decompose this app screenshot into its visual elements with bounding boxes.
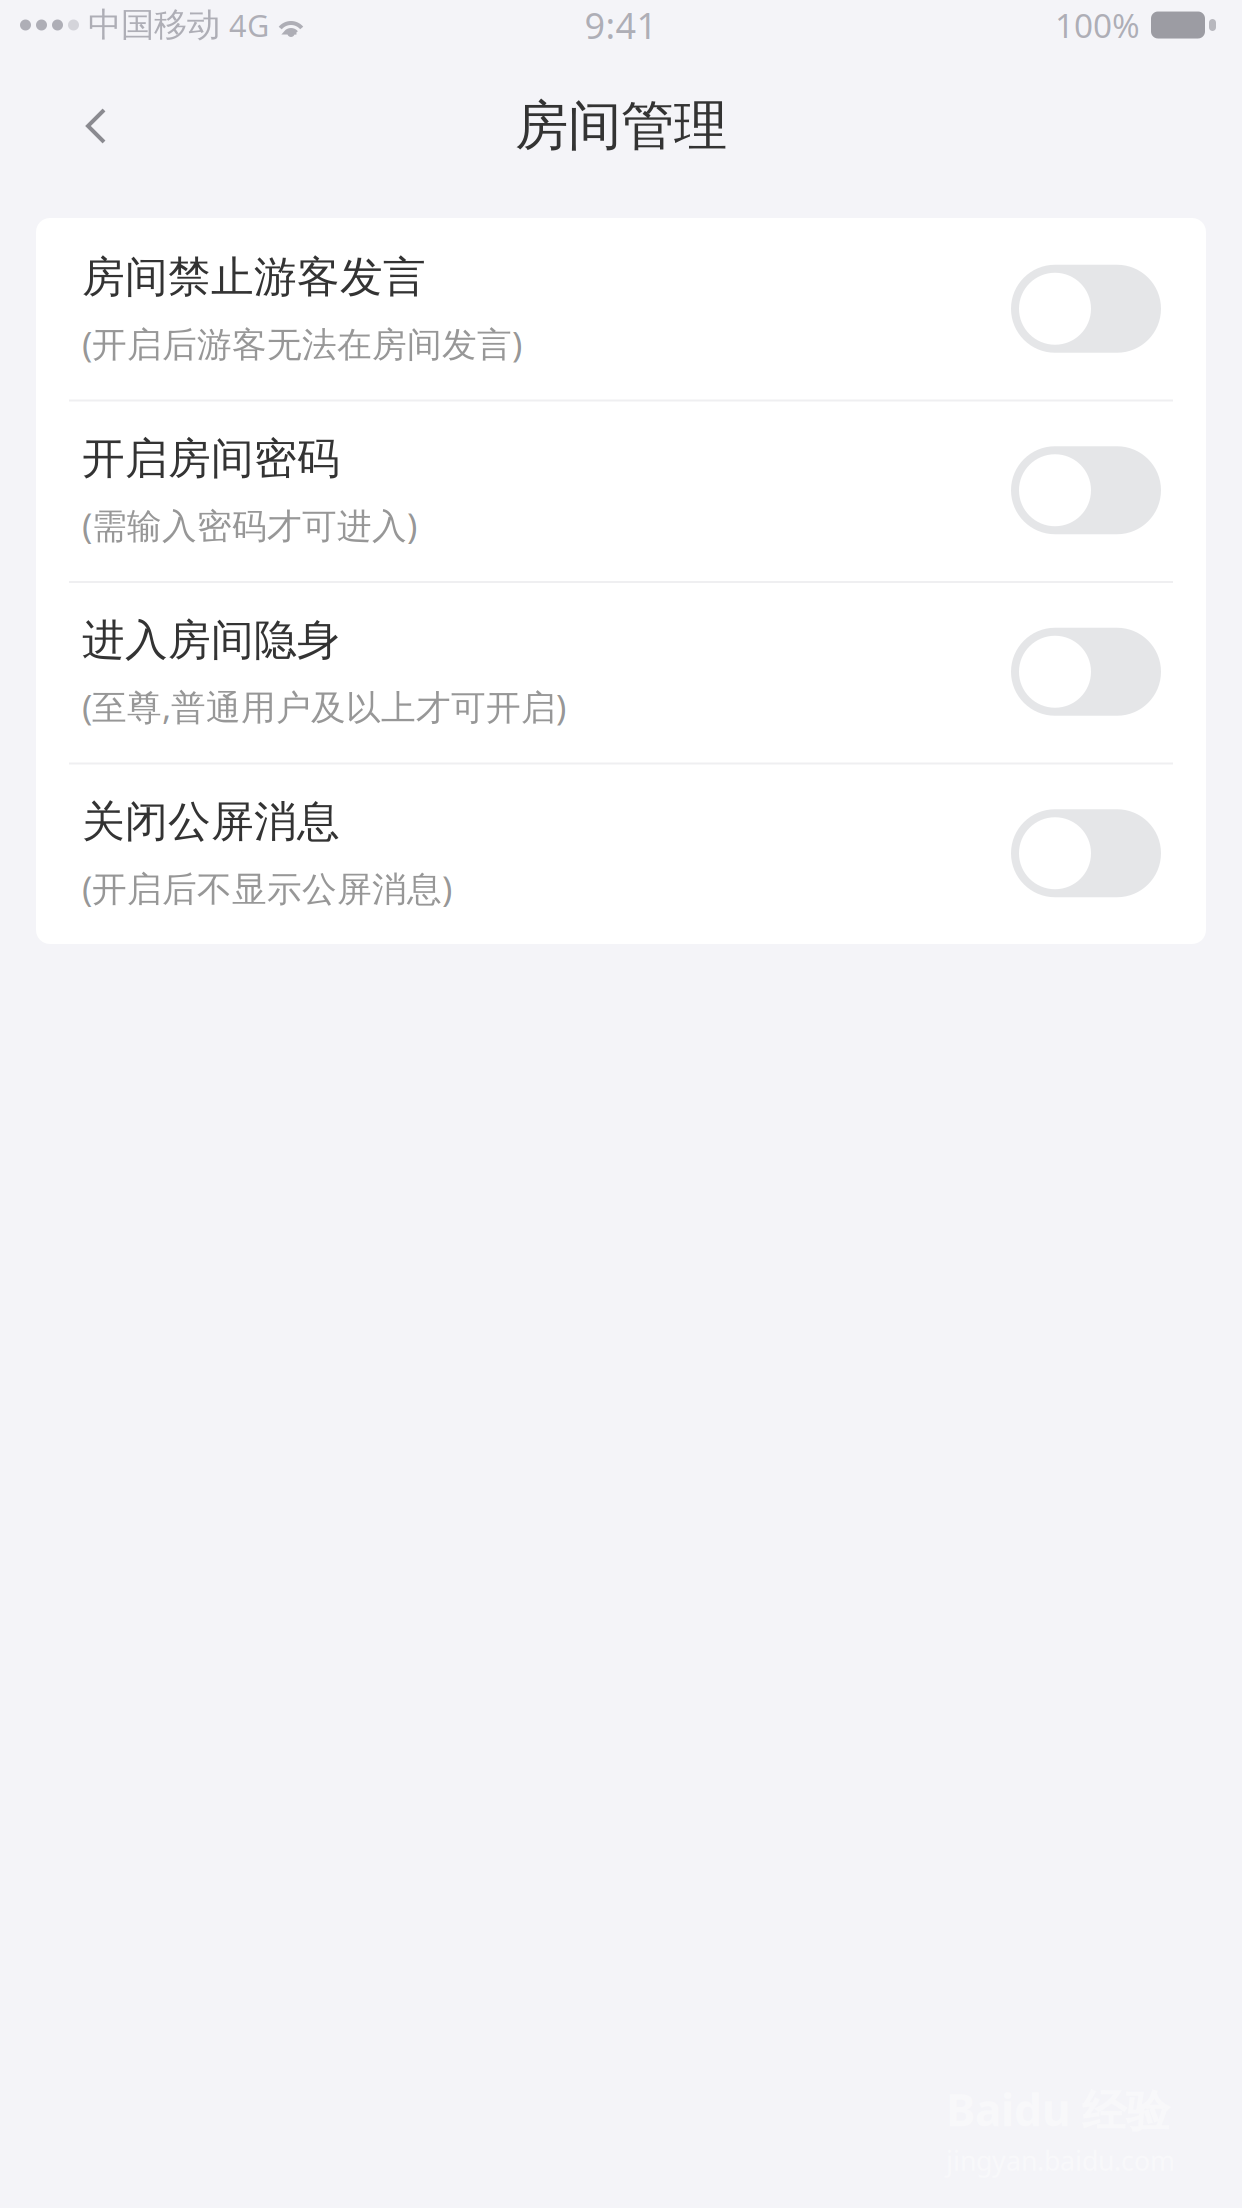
staticText: 开启房间密码 (82, 432, 340, 485)
button[interactable]: 关闭公屏消息 (36, 762, 1206, 944)
button[interactable]: Back (0, 53, 149, 199)
staticText: (至尊,普通用户及以上才可开启) (82, 683, 566, 729)
staticText: 中国移动 (88, 4, 220, 45)
staticText: 100% (1055, 3, 1140, 47)
staticText: (开启后不显示公屏消息) (82, 865, 452, 911)
staticText: 进入房间隐身 (82, 614, 340, 666)
staticText: 房间管理 (515, 93, 727, 159)
staticText: (需输入密码才可进入) (82, 502, 417, 548)
staticText: 4G (229, 5, 269, 45)
staticText: 房间禁止游客发言 (82, 251, 426, 303)
staticText: (开启后游客无法在房间发言) (82, 320, 522, 366)
button[interactable]: 进入房间隐身 (36, 581, 1206, 762)
button[interactable]: 开启房间密码 (36, 399, 1206, 581)
staticText: 9:41 (584, 1, 657, 49)
staticText: 关闭公屏消息 (82, 795, 340, 848)
button[interactable]: 房间禁止游客发言 (36, 218, 1206, 399)
